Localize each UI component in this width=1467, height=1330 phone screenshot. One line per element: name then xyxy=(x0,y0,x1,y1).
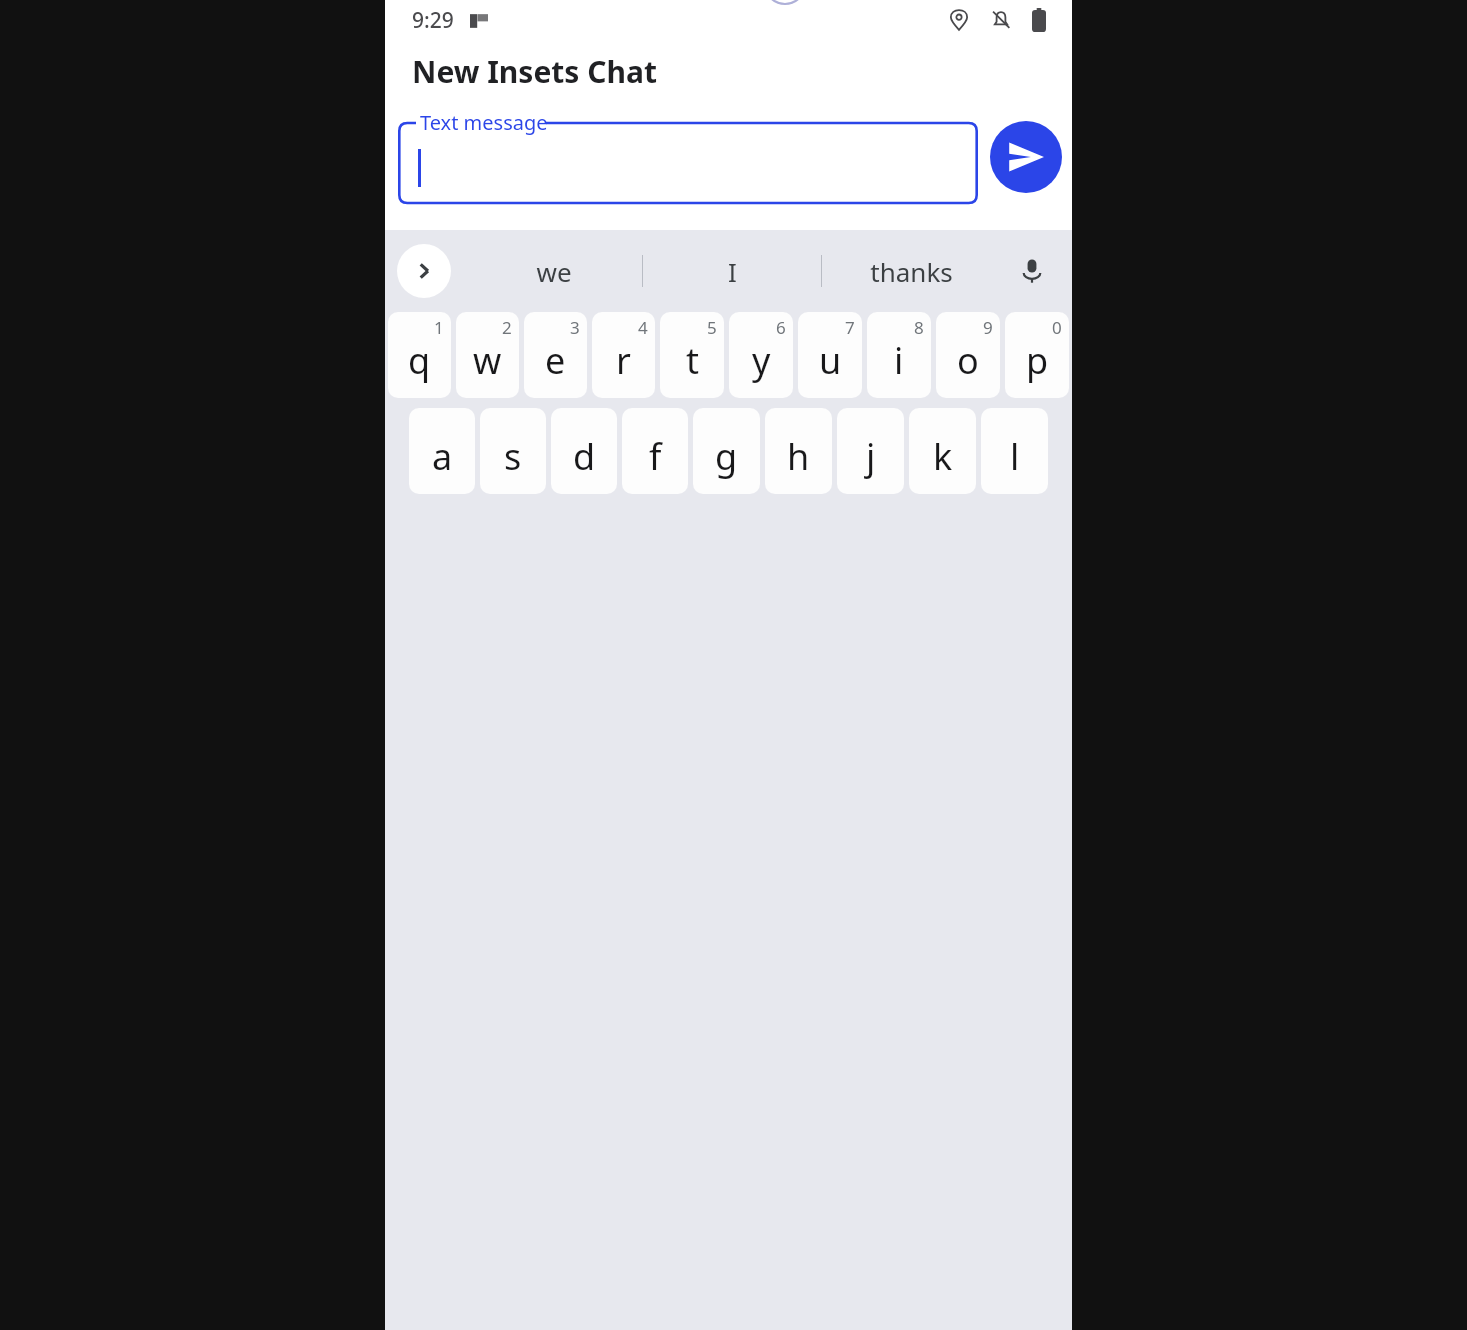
button[interactable]: Text message xyxy=(398,107,978,207)
staticText: s xyxy=(504,432,522,481)
staticText: 8 xyxy=(914,316,924,339)
staticText: a xyxy=(432,432,453,481)
staticText: o xyxy=(957,336,979,385)
staticText: 3 xyxy=(570,316,580,339)
button[interactable]: 3 xyxy=(524,312,587,398)
button[interactable]: d xyxy=(551,408,617,494)
staticText: 6 xyxy=(776,316,786,339)
button[interactable]: 2 xyxy=(456,312,519,398)
button[interactable]: we xyxy=(465,230,642,312)
button[interactable]: Expand toolbar xyxy=(397,244,451,298)
staticText: p xyxy=(1026,336,1049,385)
button[interactable]: f xyxy=(622,408,688,494)
button[interactable]: g xyxy=(693,408,760,494)
button[interactable]: I xyxy=(643,230,821,312)
staticText: 5 xyxy=(707,316,717,339)
staticText: 4 xyxy=(638,316,648,339)
staticText: h xyxy=(787,432,810,481)
other: Battery xyxy=(1032,8,1046,32)
staticText: 2 xyxy=(502,316,512,339)
staticText: y xyxy=(752,336,771,385)
staticText: t xyxy=(686,336,699,385)
button[interactable]: j xyxy=(837,408,904,494)
staticText: k xyxy=(933,432,953,481)
button[interactable]: l xyxy=(981,408,1048,494)
button[interactable]: 0 xyxy=(1005,312,1069,398)
other: Location xyxy=(948,9,970,31)
button[interactable]: h xyxy=(765,408,832,494)
button[interactable]: 9 xyxy=(936,312,1000,398)
staticText: r xyxy=(616,336,631,385)
staticText: d xyxy=(573,432,596,481)
button[interactable]: k xyxy=(909,408,976,494)
button[interactable]: 8 xyxy=(867,312,931,398)
button[interactable]: 6 xyxy=(729,312,793,398)
button[interactable]: Voice input xyxy=(1008,247,1056,295)
staticText: w xyxy=(473,336,502,385)
staticText: l xyxy=(1010,432,1020,481)
staticText: q xyxy=(408,336,431,385)
staticText: 9:29 xyxy=(412,6,454,35)
staticText: 7 xyxy=(845,316,855,339)
staticText: i xyxy=(894,336,904,385)
staticText: f xyxy=(649,432,662,481)
staticText: New Insets Chat xyxy=(412,51,657,92)
staticText: we xyxy=(536,254,572,289)
button[interactable]: thanks xyxy=(822,230,1000,312)
button[interactable]: Send xyxy=(990,121,1062,193)
staticText: 9 xyxy=(983,316,993,339)
button[interactable]: 1 xyxy=(388,312,451,398)
staticText: g xyxy=(715,432,738,481)
button[interactable]: 5 xyxy=(660,312,724,398)
staticText: 0 xyxy=(1052,316,1062,339)
other: Notifications off xyxy=(990,9,1012,31)
button[interactable]: a xyxy=(409,408,475,494)
staticText: I xyxy=(728,254,737,289)
staticText: Text message xyxy=(420,109,548,136)
staticText: 1 xyxy=(434,316,444,339)
staticText: e xyxy=(545,336,566,385)
button[interactable]: 7 xyxy=(798,312,862,398)
staticText: u xyxy=(819,336,842,385)
button[interactable]: s xyxy=(480,408,546,494)
staticText: thanks xyxy=(870,254,953,289)
button[interactable]: 4 xyxy=(592,312,655,398)
staticText: j xyxy=(866,432,876,481)
